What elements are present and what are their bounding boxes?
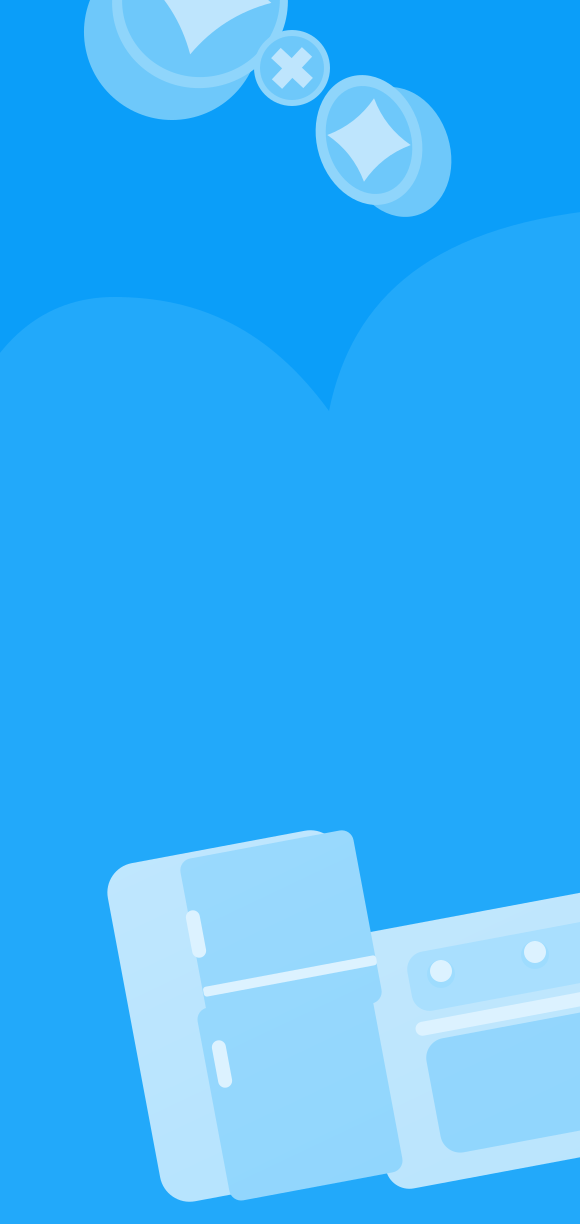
button[interactable]: Continue (0, 0, 580, 1224)
